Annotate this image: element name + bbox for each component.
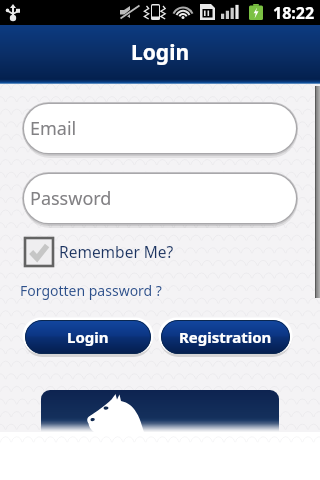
button[interactable]: Forgotten password ?: [20, 281, 162, 300]
button[interactable]: Remember Me?: [25, 238, 174, 266]
button[interactable]: Login: [22, 317, 154, 357]
button[interactable]: Registration: [158, 317, 293, 357]
button[interactable]: [41, 390, 279, 432]
staticText: Remember Me?: [59, 241, 174, 262]
staticText: Email: [30, 116, 77, 141]
button[interactable]: Password: [22, 172, 298, 227]
staticText: Password: [30, 186, 112, 211]
button[interactable]: Email: [22, 102, 298, 157]
staticText: Login: [67, 327, 109, 347]
staticText: Registration: [179, 327, 272, 347]
staticText: 18:22: [273, 2, 315, 24]
staticText: Login: [131, 38, 190, 67]
